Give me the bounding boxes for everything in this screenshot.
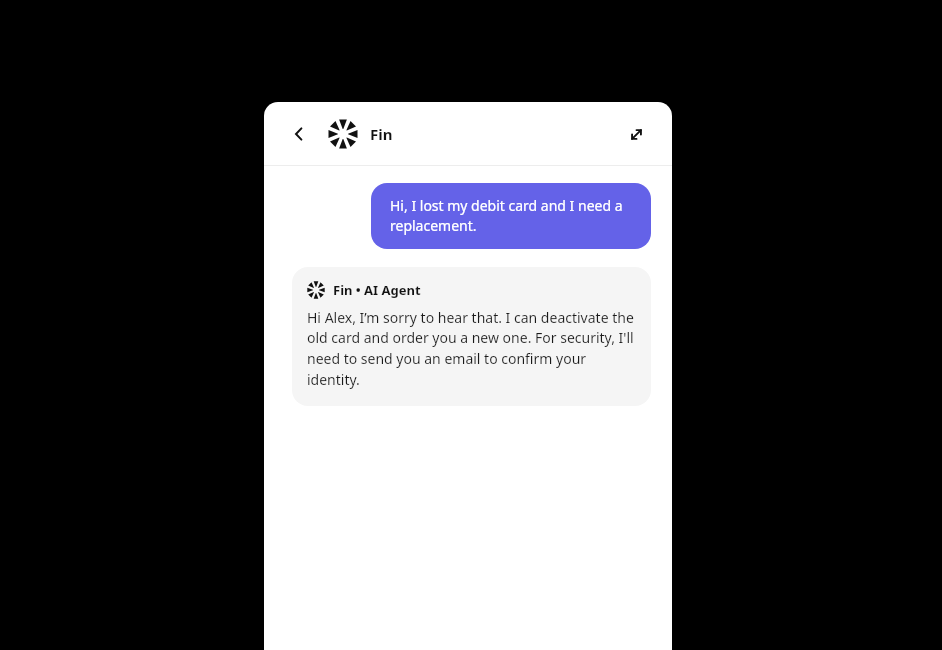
button[interactable]: Hi, I lost my debit card and I need a re… <box>371 183 651 249</box>
button[interactable]: Expand <box>622 120 650 148</box>
button[interactable]: Fin • AI Agent <box>292 267 651 406</box>
button[interactable]: Back <box>286 121 312 147</box>
staticText: Fin <box>370 124 393 144</box>
staticText: Hi, I lost my debit card and I need a re… <box>390 196 632 236</box>
staticText: Hi Alex, I’m sorry to hear that. I can d… <box>307 308 636 390</box>
staticText: Fin • AI Agent <box>333 281 421 299</box>
